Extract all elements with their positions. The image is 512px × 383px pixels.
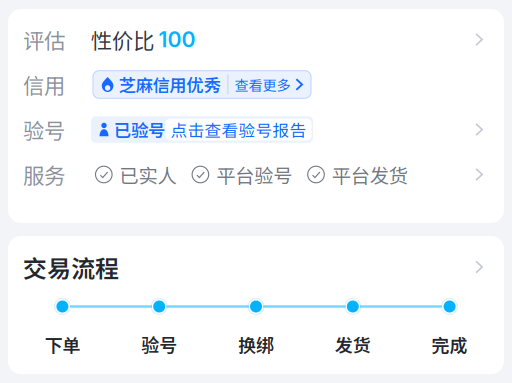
staticText: 点击查看验号报告 xyxy=(170,117,306,141)
button[interactable]: 服务 xyxy=(8,152,504,197)
staticText: 平台验号 xyxy=(216,160,292,188)
staticText: 芝麻信用优秀 xyxy=(118,72,220,97)
button[interactable]: 验号 xyxy=(8,107,504,152)
staticText: 评估 xyxy=(23,24,65,55)
staticText: 性价比 xyxy=(91,24,154,55)
staticText: 验号 xyxy=(141,331,177,357)
button[interactable]: 芝麻信用优秀 xyxy=(93,71,311,98)
staticText: 交易流程 xyxy=(23,250,119,284)
staticText: 信用 xyxy=(23,69,65,100)
staticText: 完成 xyxy=(432,331,468,357)
staticText: 已验号 xyxy=(114,117,165,142)
staticText: 换绑 xyxy=(238,331,274,357)
staticText: 平台发货 xyxy=(332,160,408,188)
button[interactable]: 交易流程 xyxy=(8,236,504,298)
staticText: 服务 xyxy=(23,159,65,190)
staticText: 下单 xyxy=(44,331,80,357)
staticText: 验号 xyxy=(23,114,65,145)
staticText: 查看更多 xyxy=(234,74,290,95)
button[interactable]: 评估 xyxy=(8,17,504,62)
button[interactable]: 信用 xyxy=(8,62,504,107)
staticText: 发货 xyxy=(335,331,371,357)
staticText: 100 xyxy=(158,27,195,52)
staticText: 已实人 xyxy=(120,160,177,188)
